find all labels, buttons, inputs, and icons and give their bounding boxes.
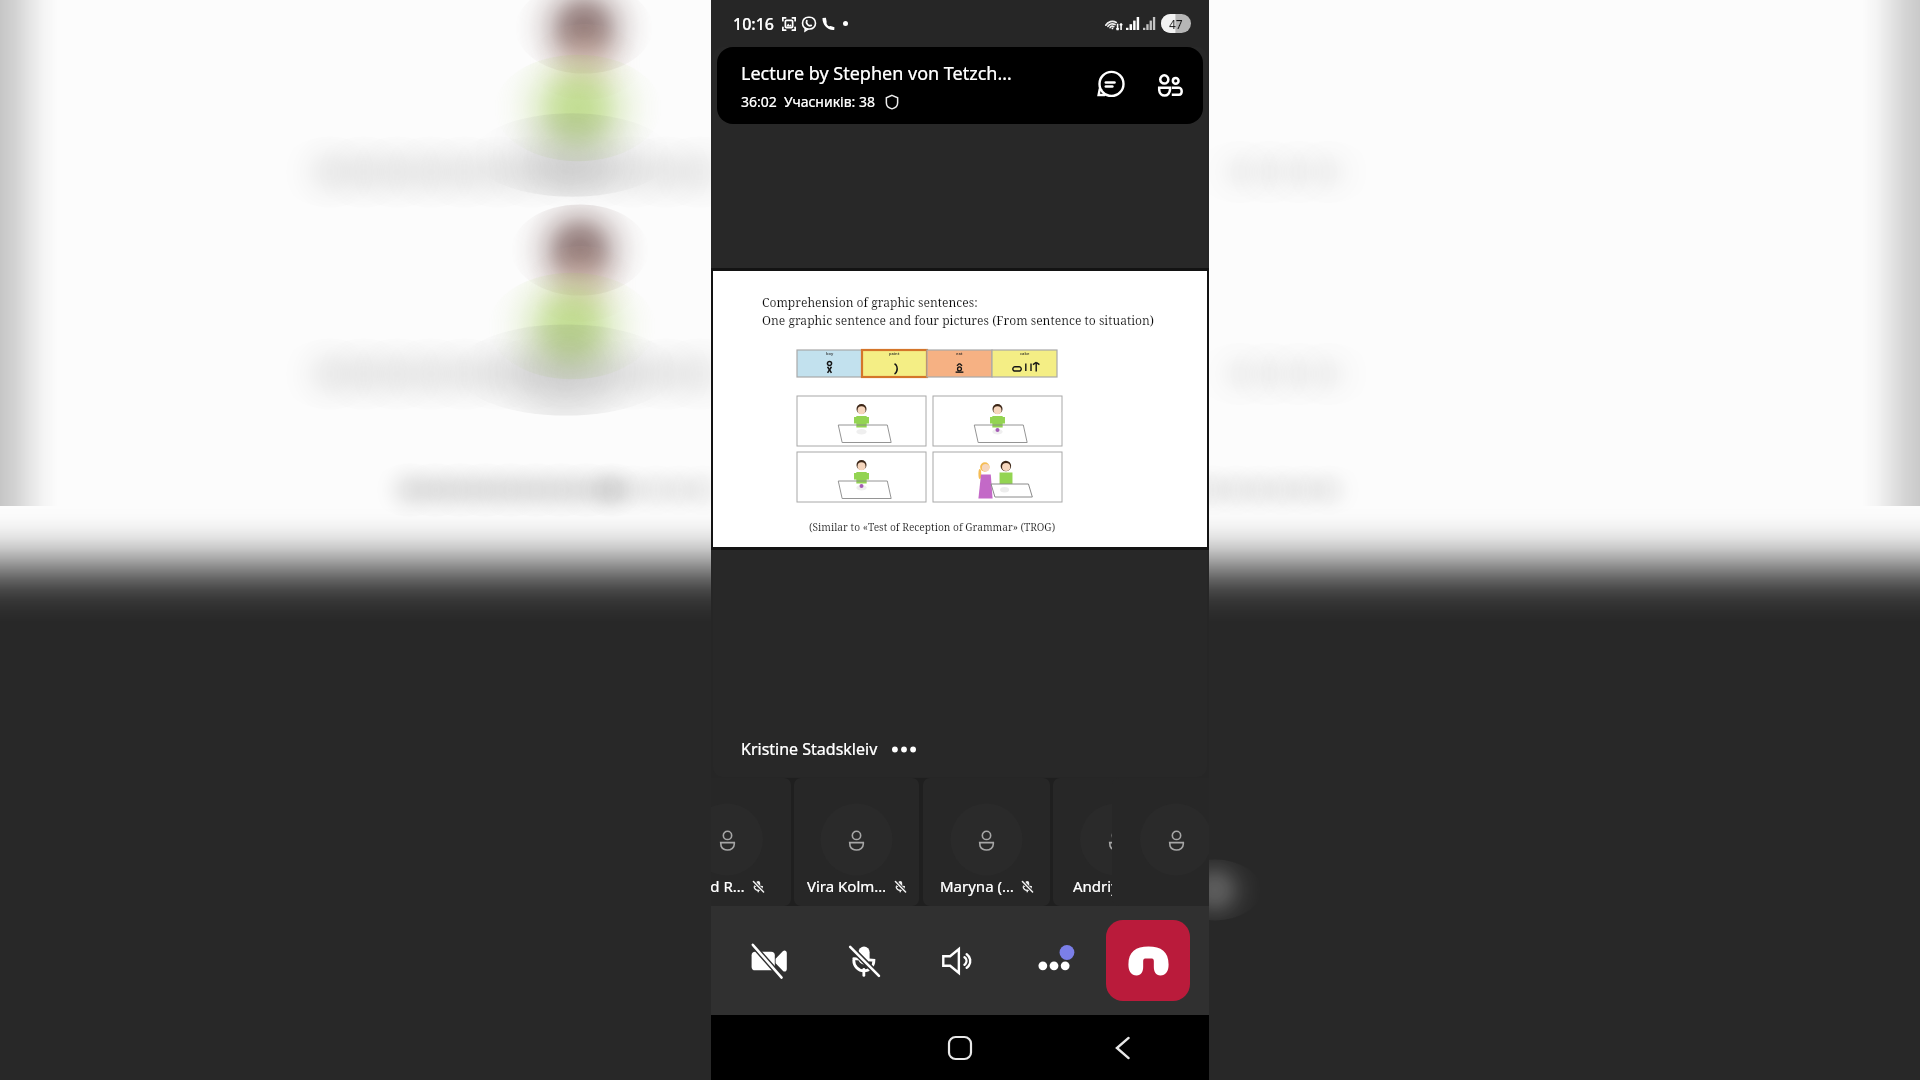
button[interactable]: Speaker (912, 906, 1008, 1015)
button[interactable]: Vira Kolm… (794, 778, 919, 906)
button[interactable]: Participants (1147, 63, 1193, 109)
button[interactable]: End call (1106, 920, 1190, 1001)
staticText: Andriy Kov… (1073, 876, 1160, 896)
button[interactable]: Back (1099, 1024, 1147, 1072)
button[interactable] (1112, 778, 1209, 906)
button[interactable]: Vlad R… (711, 778, 791, 906)
staticText: Kristine Stadskleiv (741, 738, 878, 760)
staticText: 47 (1169, 16, 1183, 32)
button[interactable]: Kristine Stadskleiv (741, 720, 1209, 778)
staticText: paint (889, 351, 900, 356)
button[interactable]: Comprehension of graphic sentences: (711, 268, 1209, 550)
button[interactable]: Lecture by Stephen von Tetzch… (717, 47, 1203, 124)
staticText: boy (826, 351, 834, 356)
button[interactable]: Home (936, 1024, 984, 1072)
button[interactable]: Maryna (… (923, 778, 1050, 906)
button[interactable]: Andriy Kov… (1053, 778, 1179, 906)
staticText: eat (956, 351, 963, 356)
staticText: Lecture by Stephen von Tetzch… (741, 61, 1012, 86)
button[interactable]: Unmute microphone (818, 906, 914, 1015)
button[interactable] (713, 47, 1207, 777)
button[interactable]: Chat (1087, 63, 1133, 109)
staticText: (Similar to «Test of Reception of Gramma… (809, 520, 1056, 534)
staticText: 36:02 Учасників: 38 (741, 92, 875, 111)
button[interactable]: More options (1006, 906, 1102, 1015)
staticText: Vira Kolm… (807, 876, 887, 896)
button[interactable]: Turn camera on (722, 906, 818, 1015)
staticText: Maryna (… (940, 876, 1014, 896)
staticText: Comprehension of graphic sentences: (762, 294, 978, 310)
staticText: One graphic sentence and four pictures (… (762, 312, 1155, 328)
staticText: 10:16 (733, 13, 774, 35)
staticText: cake (1020, 351, 1030, 356)
staticText: Vlad R… (711, 876, 745, 896)
